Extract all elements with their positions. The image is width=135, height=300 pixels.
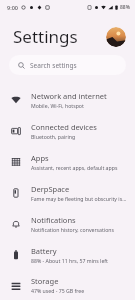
button[interactable]: Account bbox=[106, 27, 126, 47]
staticText: Notifications bbox=[31, 215, 76, 225]
button[interactable]: Battery bbox=[0, 239, 135, 270]
staticText: Assistant, recent apps, default apps bbox=[31, 164, 118, 171]
staticText: Connected devices bbox=[31, 122, 97, 132]
staticText: Apps bbox=[31, 153, 49, 163]
staticText: 88% - About 11 hrs, 57 mins left bbox=[31, 257, 108, 264]
button[interactable]: Notifications bbox=[0, 208, 135, 239]
staticText: 88% bbox=[120, 4, 130, 11]
button[interactable]: Search settings bbox=[9, 55, 126, 75]
staticText: DerpSpace bbox=[31, 184, 70, 194]
button[interactable]: Connected devices bbox=[0, 115, 135, 146]
button[interactable]: Apps bbox=[0, 146, 135, 177]
button[interactable]: DerpSpace bbox=[0, 177, 135, 208]
staticText: Notification history, conversations bbox=[31, 226, 115, 233]
staticText: Network and internet bbox=[31, 91, 107, 101]
staticText: Search settings bbox=[30, 61, 77, 70]
staticText: 47% used - 75 GB free bbox=[31, 287, 85, 294]
staticText: Storage bbox=[31, 276, 59, 286]
staticText: Settings bbox=[13, 25, 78, 48]
staticText: Battery bbox=[31, 246, 57, 256]
button[interactable]: Network and internet bbox=[0, 84, 135, 115]
staticText: Fame may be fleeting but obscurity is fo… bbox=[31, 195, 127, 202]
button[interactable]: Storage bbox=[0, 270, 135, 300]
staticText: Bluetooth, pairing bbox=[31, 133, 76, 140]
staticText: Mobile, Wi‑Fi, hotspot bbox=[31, 102, 84, 109]
staticText: 9:00 bbox=[7, 4, 18, 11]
